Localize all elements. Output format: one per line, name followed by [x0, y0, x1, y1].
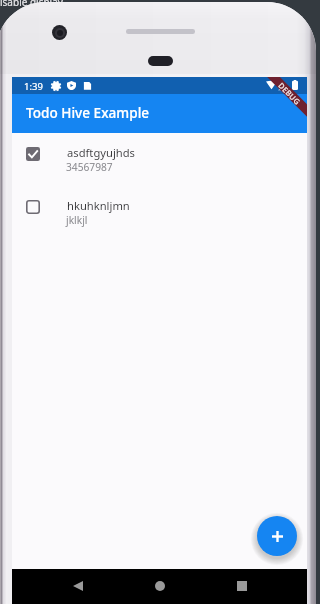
- button[interactable]: Home: [146, 572, 174, 600]
- button[interactable]: Back: [64, 572, 92, 600]
- button[interactable]: Add todo: [257, 516, 297, 556]
- button[interactable]: Mark incomplete: [12, 133, 307, 186]
- staticText: 34567987: [66, 160, 113, 174]
- staticText: 1:39: [24, 80, 43, 93]
- button[interactable]: Mark incomplete: [26, 147, 40, 161]
- staticText: jklkjl: [66, 213, 88, 227]
- button[interactable]: Recents: [228, 572, 256, 600]
- staticText: isable display: [0, 0, 63, 9]
- staticText: hkuhknljmn: [67, 198, 130, 213]
- staticText: Todo Hive Example: [26, 103, 150, 122]
- staticText: asdftgyujhds: [67, 145, 135, 160]
- button[interactable]: Mark complete: [26, 200, 40, 214]
- button[interactable]: Mark complete: [12, 186, 307, 239]
- staticText: DEBUG: [277, 80, 303, 107]
